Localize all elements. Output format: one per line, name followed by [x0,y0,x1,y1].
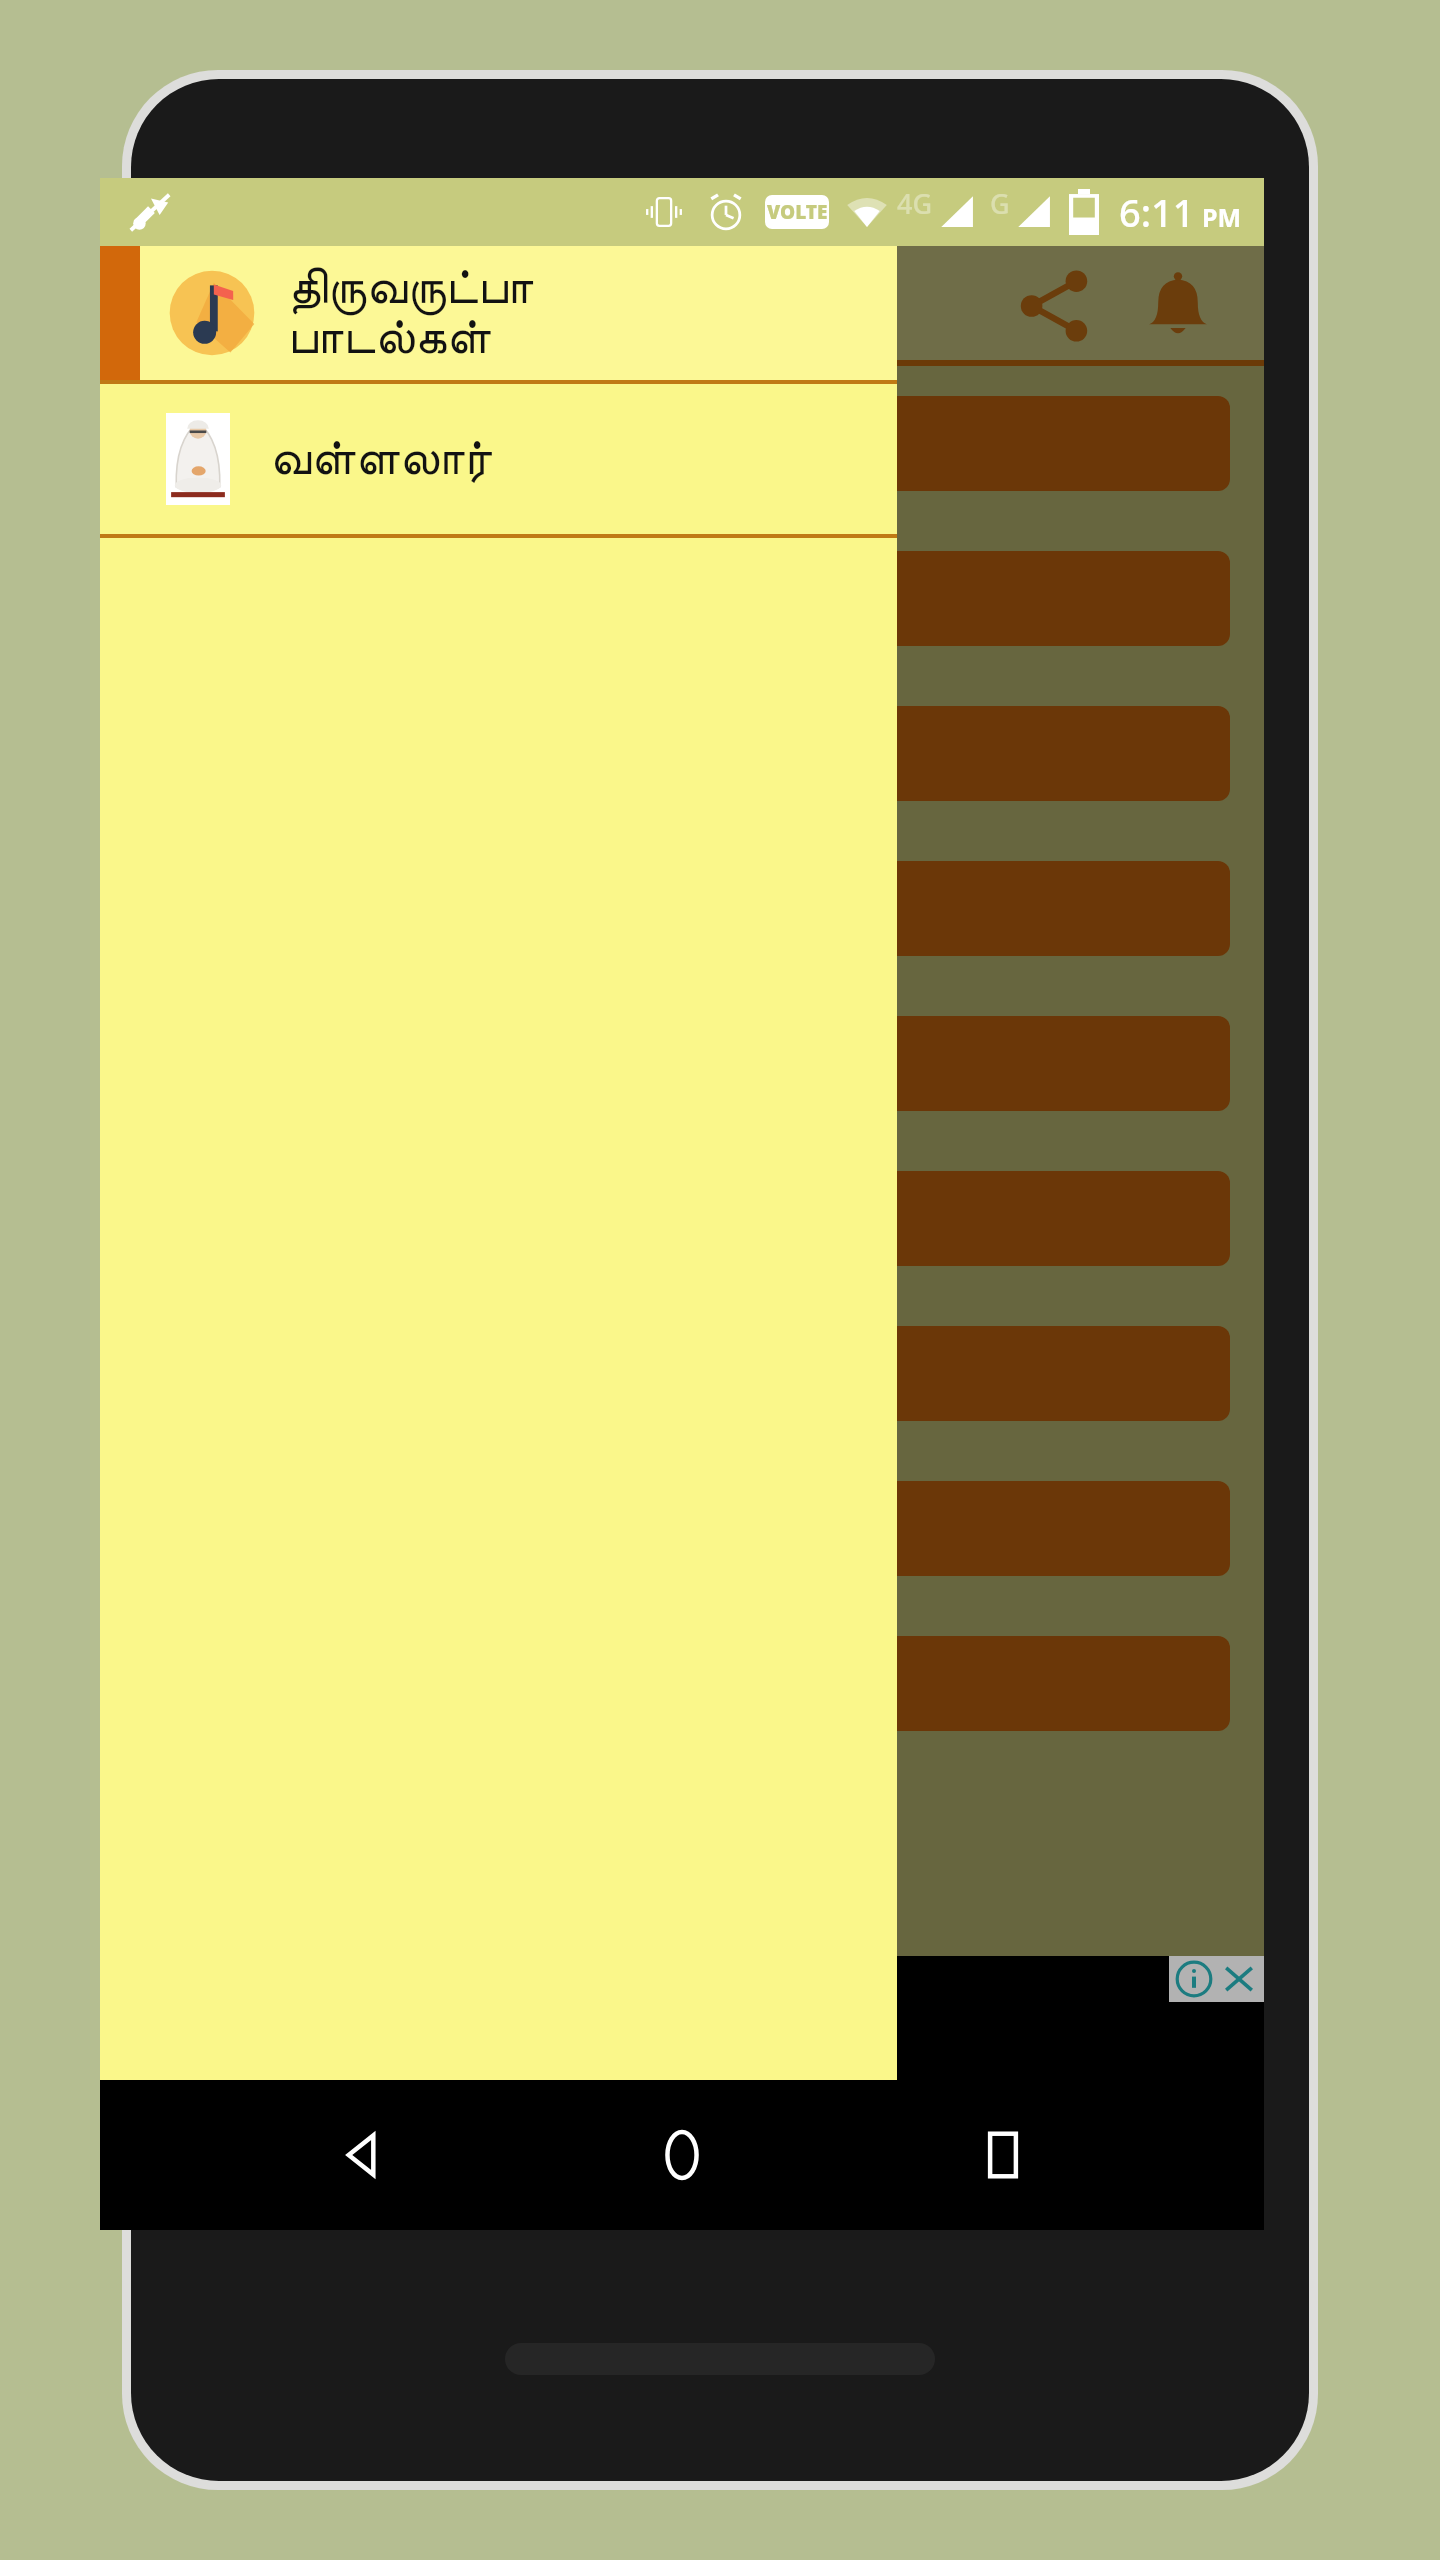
button[interactable]: Recents [943,2095,1063,2215]
button[interactable] [134,1326,1230,1421]
button[interactable]: Home [622,2095,742,2215]
button[interactable]: திருவருட்பா பாடல்கள் - தொகுதி [134,396,1230,491]
button[interactable]: திருவருட்பா [100,246,897,380]
staticText: G [990,185,1010,222]
button[interactable]: Notifications [1128,256,1228,356]
button[interactable]: வள்ளலார் [100,384,897,534]
staticText: வள்ளலார் [270,434,492,484]
staticText: திருவருட்பா [288,263,534,313]
staticText: 6:11 [1119,186,1195,238]
staticText: பாடல்கள் [288,313,491,363]
button[interactable]: Share [1004,256,1104,356]
staticText: 4G [897,185,933,222]
staticText: PM [1202,200,1242,234]
staticText: திருவருட்பா பாடல்கள் - தொகுதி [170,417,709,471]
button[interactable] [134,1636,1230,1731]
button[interactable] [134,551,1230,646]
button[interactable]: Back [301,2095,421,2215]
button[interactable]: Close ad [1219,1959,1259,1999]
button[interactable] [134,1016,1230,1111]
staticText: VOLTE [767,199,828,225]
button[interactable] [134,706,1230,801]
button[interactable] [134,861,1230,956]
button[interactable] [134,1171,1230,1266]
button[interactable] [134,1481,1230,1576]
